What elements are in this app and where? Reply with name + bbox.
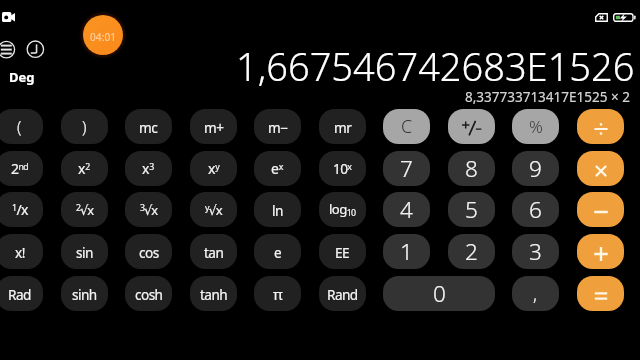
staticText: , [533, 282, 538, 307]
button[interactable]: 5 [448, 192, 495, 227]
button[interactable]: xy [190, 151, 237, 186]
staticText: xy [208, 159, 220, 178]
staticText: ( [17, 116, 22, 138]
button[interactable]: m+ [190, 109, 237, 144]
button[interactable]: Equals [577, 276, 624, 311]
button[interactable]: 2√x [61, 192, 108, 227]
staticText: mc [139, 118, 158, 137]
staticText: tan [204, 243, 224, 262]
staticText: 4 [400, 194, 413, 225]
staticText: sin [76, 243, 93, 262]
button[interactable]: π [254, 276, 301, 311]
button[interactable]: 1 [383, 234, 430, 269]
button[interactable]: cosh [125, 276, 172, 311]
button[interactable]: Multiply [577, 151, 624, 186]
button[interactable]: sin [61, 234, 108, 269]
button[interactable]: ( [0, 109, 43, 144]
staticText: 10x [333, 159, 352, 178]
staticText: cos [139, 243, 159, 262]
button[interactable]: % [512, 109, 559, 144]
button[interactable]: Deg [9, 68, 35, 86]
staticText: 0 [433, 278, 446, 309]
button[interactable]: 7 [383, 151, 430, 186]
staticText: 3√x [140, 201, 158, 219]
staticText: Rad [8, 285, 31, 304]
button[interactable]: EE [319, 234, 366, 269]
staticText: 8,337733713417E1525 × 2 [465, 88, 630, 104]
staticText: Deg [9, 68, 35, 86]
staticText: 6 [529, 194, 542, 225]
staticText: x! [15, 243, 25, 262]
staticText: 1,667546742683E1526 [236, 40, 635, 88]
staticText: mr [334, 118, 352, 137]
staticText: Rand [327, 285, 358, 304]
staticText: 2√x [76, 201, 94, 219]
staticText: log10 [329, 200, 356, 219]
button[interactable]: C [383, 109, 430, 144]
button[interactable]: x2 [61, 151, 108, 186]
button[interactable]: , [512, 276, 559, 311]
other: Battery charging [613, 13, 636, 22]
button[interactable]: Rand [319, 276, 366, 311]
staticText: m+ [204, 118, 224, 137]
other: Menu [0, 37, 19, 62]
button[interactable]: x! [0, 234, 43, 269]
staticText: π [273, 284, 283, 304]
button[interactable]: mc [125, 109, 172, 144]
button[interactable]: m− [254, 109, 301, 144]
button[interactable]: 6 [512, 192, 559, 227]
staticText: x3 [142, 159, 155, 178]
staticText: tanh [200, 285, 228, 304]
other: No SIM card [595, 13, 608, 22]
button[interactable]: Divide [577, 109, 624, 144]
staticText: 5 [465, 194, 478, 225]
staticText: 1/x [12, 200, 28, 219]
button[interactable]: Toggle sign [448, 109, 495, 144]
staticText: 1 [400, 236, 413, 267]
staticText: % [529, 115, 543, 138]
button[interactable]: Minus [577, 192, 624, 227]
staticText: EE [335, 243, 350, 262]
staticText: 3 [529, 236, 542, 267]
staticText: 8 [465, 153, 478, 184]
button[interactable]: 2nd [0, 151, 43, 186]
button[interactable]: 3 [512, 234, 559, 269]
button[interactable]: 3√x [125, 192, 172, 227]
button[interactable]: ex [254, 151, 301, 186]
other: Screen recording [2, 12, 15, 22]
staticText: ln [272, 201, 283, 220]
button[interactable]: 4 [383, 192, 430, 227]
other: History [23, 37, 48, 62]
button[interactable]: ) [61, 109, 108, 144]
button[interactable]: tan [190, 234, 237, 269]
button[interactable]: y√x [190, 192, 237, 227]
button[interactable]: e [254, 234, 301, 269]
button[interactable]: Rad [0, 276, 43, 311]
button[interactable]: log10 [319, 192, 366, 227]
button[interactable]: 9 [512, 151, 559, 186]
staticText: e [274, 243, 282, 262]
staticText: y√x [205, 201, 222, 219]
button[interactable]: Plus [577, 234, 624, 269]
button[interactable]: 8 [448, 151, 495, 186]
button[interactable]: x3 [125, 151, 172, 186]
button[interactable]: cos [125, 234, 172, 269]
staticText: 7 [400, 153, 413, 184]
button[interactable]: tanh [190, 276, 237, 311]
staticText: 2nd [11, 159, 29, 178]
button[interactable]: ln [254, 192, 301, 227]
staticText: ex [271, 159, 284, 178]
staticText: 04:01 [90, 30, 117, 44]
button[interactable]: 10x [319, 151, 366, 186]
staticText: x2 [78, 159, 91, 178]
button[interactable]: 1/x [0, 192, 43, 227]
staticText: 2 [465, 236, 478, 267]
button[interactable]: 04:01 [83, 15, 123, 55]
button[interactable]: mr [319, 109, 366, 144]
staticText: C [401, 114, 413, 139]
staticText: cosh [135, 285, 163, 304]
button[interactable]: 2 [448, 234, 495, 269]
button[interactable]: sinh [61, 276, 108, 311]
staticText: ) [82, 116, 87, 138]
button[interactable]: 0 [383, 276, 495, 311]
